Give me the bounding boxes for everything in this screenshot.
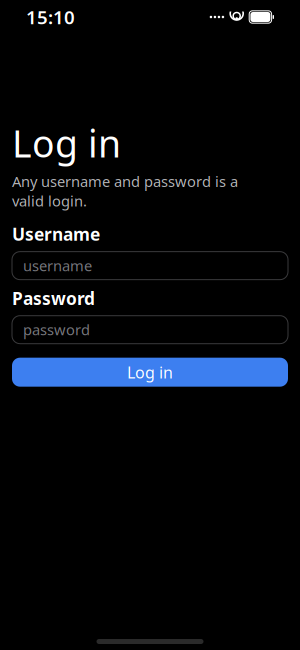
staticText: password (23, 320, 90, 339)
button[interactable]: password (12, 316, 288, 344)
staticText: Log in (12, 118, 121, 168)
staticText: Log in (127, 362, 173, 383)
staticText: Any username and password is a valid log… (12, 172, 238, 211)
button[interactable]: Log in (12, 358, 288, 387)
staticText: username (23, 256, 92, 275)
button[interactable]: username (12, 252, 288, 280)
staticText: Password (12, 287, 95, 310)
staticText: Username (12, 223, 100, 246)
staticText: 15:10 (26, 5, 75, 29)
